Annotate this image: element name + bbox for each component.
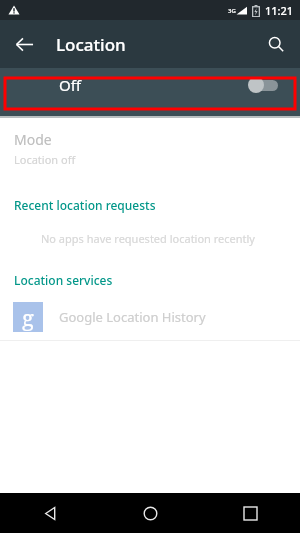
staticText: Location services — [14, 272, 113, 288]
button[interactable]: Recent apps — [200, 493, 300, 533]
staticText: Location — [56, 33, 126, 56]
button[interactable]: Mode — [0, 128, 300, 175]
staticText: Google Location History — [59, 308, 206, 326]
staticText: g — [22, 302, 34, 332]
staticText: Location off — [14, 152, 76, 167]
staticText: Mode — [14, 130, 52, 149]
button[interactable]: g — [0, 298, 300, 336]
button[interactable]: Back — [6, 26, 42, 62]
staticText: 11:21 — [265, 3, 294, 18]
button[interactable]: Off — [0, 68, 300, 102]
staticText: No apps have requested location recently — [41, 231, 255, 246]
staticText: Off — [0, 75, 140, 95]
staticText: Recent location requests — [14, 197, 156, 213]
button[interactable]: Back — [0, 493, 100, 533]
button[interactable]: Home — [100, 493, 200, 533]
button[interactable]: Search — [258, 26, 294, 62]
staticText: 3G — [228, 7, 236, 15]
